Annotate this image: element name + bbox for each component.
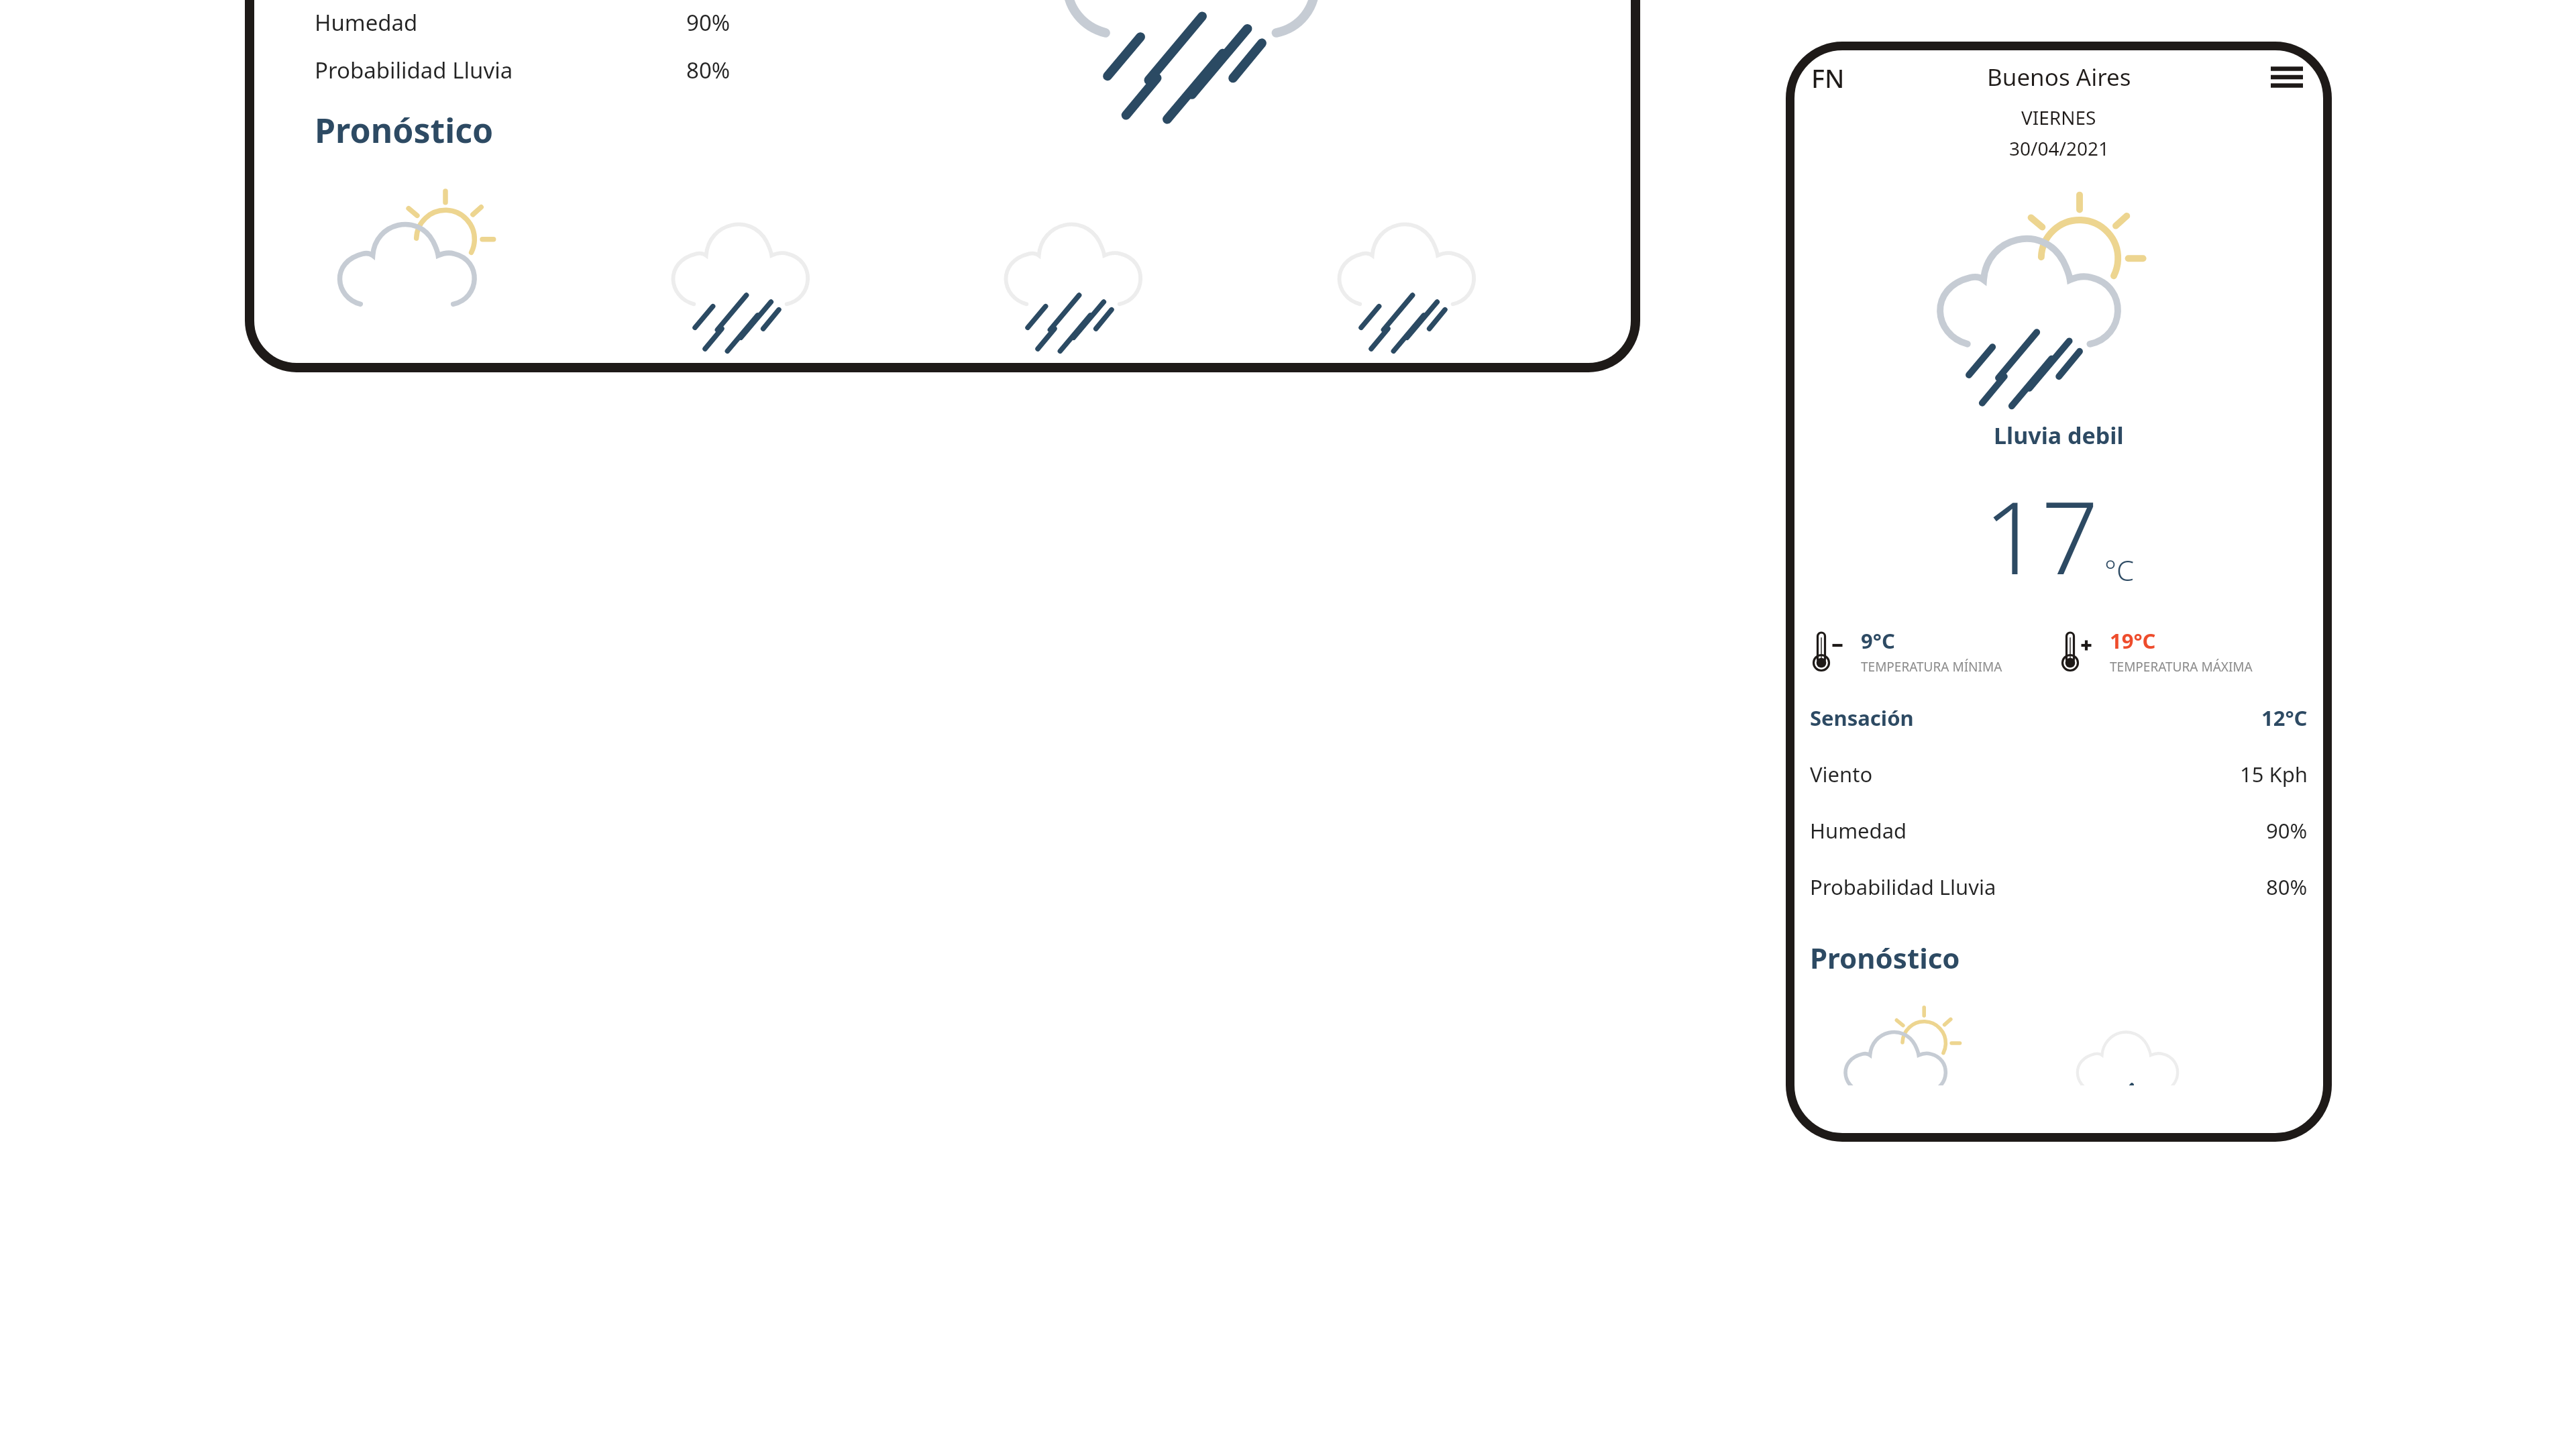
button[interactable] (981, 188, 1182, 356)
staticText: Humedad (1810, 816, 1907, 845)
staticText: TEMPERATURA MÁXIMA (2110, 658, 2253, 676)
staticText: Pronóstico (315, 107, 494, 153)
staticText: 90% (2266, 816, 2308, 845)
staticText: 19°C (2110, 627, 2156, 655)
staticText: VIERNES (2021, 105, 2096, 130)
staticText: Sensación (1810, 704, 1914, 732)
staticText: 12°C (2261, 704, 2308, 732)
staticText: Humedad (315, 7, 418, 38)
staticText: Lluvia debil (1994, 420, 2124, 451)
staticText: °C (2104, 551, 2135, 589)
staticText: 90% (686, 7, 731, 38)
button[interactable]: Probabilidad Lluvia (1810, 873, 2308, 901)
staticText: 80% (2266, 873, 2308, 901)
staticText: TEMPERATURA MÍNIMA (1861, 658, 2002, 676)
button[interactable]: 9°C (1810, 627, 2059, 676)
staticText: Probabilidad Lluvia (1810, 873, 1996, 901)
staticText: Probabilidad Lluvia (315, 55, 513, 85)
button[interactable]: Sensación (1810, 704, 2308, 732)
button[interactable] (648, 188, 849, 356)
staticText: Buenos Aires (1987, 61, 2131, 93)
button[interactable]: Menu (2266, 59, 2308, 95)
staticText: FN (1811, 60, 1845, 94)
button[interactable] (1314, 188, 1515, 356)
button[interactable]: FN (1810, 59, 1846, 95)
staticText: Viento (1810, 760, 1873, 788)
button[interactable]: Probabilidad Lluvia (315, 55, 731, 85)
staticText: 15 Kph (2240, 760, 2308, 788)
button[interactable] (315, 188, 516, 356)
staticText: 80% (686, 55, 731, 85)
staticText: Pronóstico (1810, 938, 1960, 977)
button[interactable]: Viento (1810, 760, 2308, 788)
staticText: 9°C (1861, 627, 1895, 655)
staticText: 17 (1984, 467, 2099, 604)
button[interactable]: Humedad (315, 7, 731, 38)
button[interactable]: Humedad (1810, 816, 2308, 845)
button[interactable]: 19°C (2059, 627, 2308, 676)
staticText: 30/04/2021 (2009, 136, 2109, 161)
